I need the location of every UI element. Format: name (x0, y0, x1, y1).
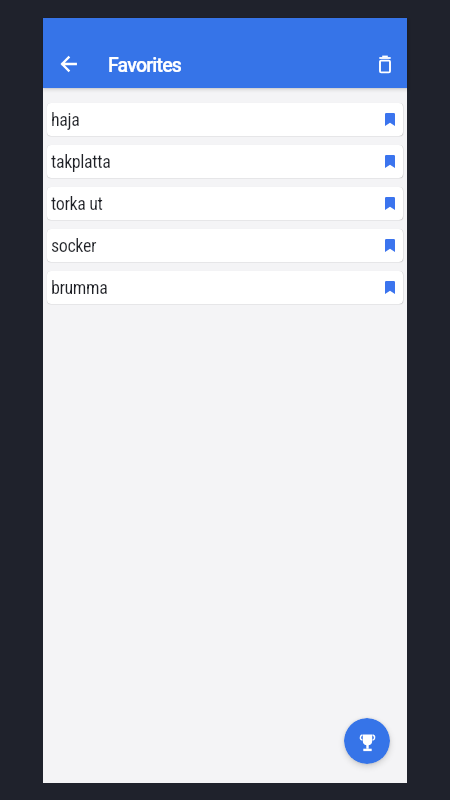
button[interactable]: brumma (47, 271, 403, 304)
button[interactable]: takplatta (47, 145, 403, 178)
staticText: torka ut (51, 193, 103, 214)
button[interactable] (49, 44, 89, 84)
staticText: Favorites (108, 54, 182, 77)
button[interactable]: haja (47, 103, 403, 136)
button[interactable] (344, 718, 390, 764)
button[interactable]: socker (47, 229, 403, 262)
staticText: brumma (51, 277, 108, 298)
button[interactable]: torka ut (47, 187, 403, 220)
staticText: haja (51, 109, 80, 130)
button[interactable] (365, 44, 405, 84)
staticText: socker (51, 235, 97, 256)
staticText: takplatta (51, 151, 111, 172)
